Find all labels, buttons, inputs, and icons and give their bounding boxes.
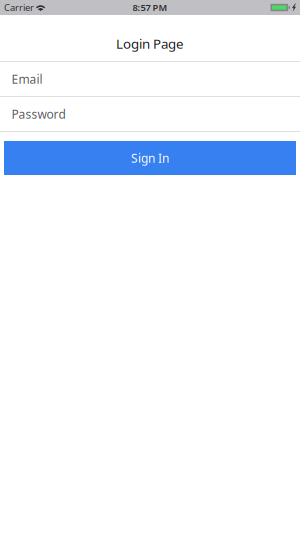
staticText: Login Page xyxy=(116,35,184,52)
staticText: Carrier xyxy=(4,1,34,14)
staticText: Password xyxy=(11,106,65,122)
staticText: Email xyxy=(11,71,42,87)
staticText: 8:57 PM xyxy=(132,1,167,14)
staticText: Sign In xyxy=(131,150,169,166)
button[interactable]: Sign In xyxy=(4,141,296,175)
button[interactable]: Email xyxy=(0,62,300,96)
button[interactable]: Password xyxy=(0,97,300,131)
